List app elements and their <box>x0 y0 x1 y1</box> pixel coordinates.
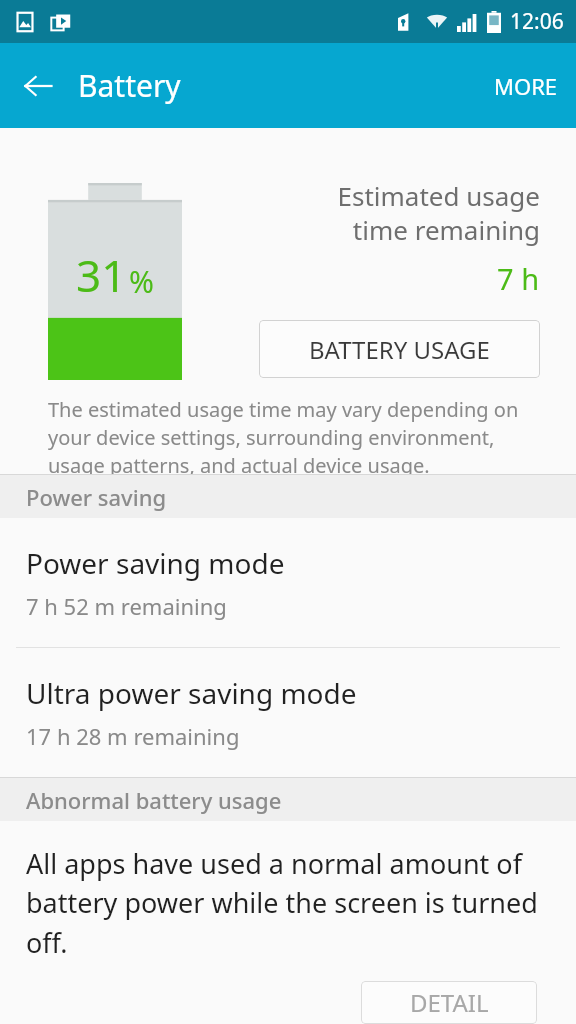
button[interactable]: Power saving mode <box>0 518 576 647</box>
staticText: Abnormal battery usage <box>26 785 282 815</box>
staticText: 12:06 <box>510 7 564 36</box>
staticText: 17 h 28 m remaining <box>26 721 240 751</box>
staticText: 7 h <box>497 259 540 298</box>
button[interactable]: Back <box>12 60 64 112</box>
staticText: 31 <box>76 245 127 305</box>
staticText: Power saving mode <box>26 544 285 582</box>
button[interactable]: Ultra power saving mode <box>0 648 576 777</box>
staticText: Battery <box>78 65 181 106</box>
staticText: DETAIL <box>410 986 489 1019</box>
staticText: 7 h 52 m remaining <box>26 591 227 621</box>
button[interactable]: BATTERY USAGE <box>259 320 540 378</box>
staticText: All apps have used a normal amount of ba… <box>26 845 550 961</box>
button[interactable]: DETAIL <box>361 981 537 1024</box>
staticText: Power saving <box>26 482 167 512</box>
staticText: The estimated usage time may vary depend… <box>48 396 538 474</box>
staticText: % <box>129 261 154 302</box>
staticText: Ultra power saving mode <box>26 674 357 712</box>
staticText: BATTERY USAGE <box>309 333 490 366</box>
staticText: MORE <box>494 71 558 101</box>
button[interactable]: MORE <box>476 59 576 113</box>
staticText: Estimated usage time remaining <box>337 178 540 247</box>
